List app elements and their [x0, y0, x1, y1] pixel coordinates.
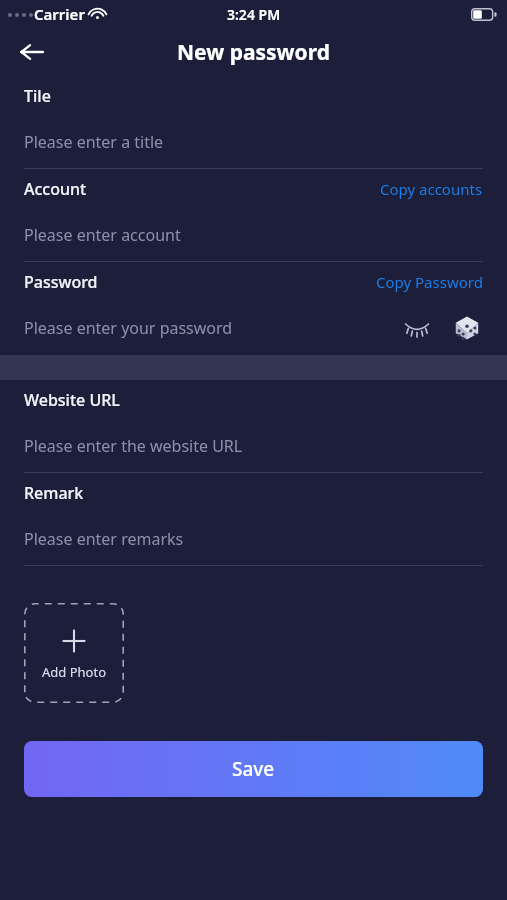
button[interactable]: Generate password: [451, 312, 483, 344]
button[interactable]: Please enter account: [0, 209, 507, 261]
button[interactable]: Show password: [401, 312, 433, 344]
button[interactable]: Add Photo: [24, 603, 124, 703]
staticText: Please enter remarks: [24, 528, 184, 550]
staticText: Carrier: [34, 4, 85, 24]
staticText: Website URL: [24, 389, 120, 411]
button[interactable]: Please enter your password: [0, 302, 507, 354]
staticText: Please enter account: [24, 224, 181, 246]
staticText: Password: [24, 271, 98, 293]
staticText: New password: [177, 38, 330, 67]
button[interactable]: Please enter a title: [0, 116, 507, 168]
staticText: Please enter a title: [24, 131, 164, 153]
staticText: 3:24 PM: [227, 5, 281, 24]
button[interactable]: Save: [24, 741, 483, 797]
button[interactable]: Copy accounts: [372, 176, 483, 202]
staticText: Please enter your password: [24, 317, 233, 339]
staticText: Save: [232, 756, 275, 782]
staticText: Copy Password: [376, 272, 483, 292]
staticText: Add Photo: [42, 663, 106, 681]
button[interactable]: Please enter the website URL: [0, 420, 507, 472]
staticText: Remark: [24, 482, 84, 504]
staticText: Tile: [24, 85, 51, 107]
staticText: Account: [24, 178, 87, 200]
staticText: Please enter the website URL: [24, 435, 243, 457]
button[interactable]: Back: [10, 30, 54, 74]
staticText: Copy accounts: [380, 179, 483, 199]
button[interactable]: Copy Password: [368, 269, 483, 295]
button[interactable]: Please enter remarks: [0, 513, 507, 565]
